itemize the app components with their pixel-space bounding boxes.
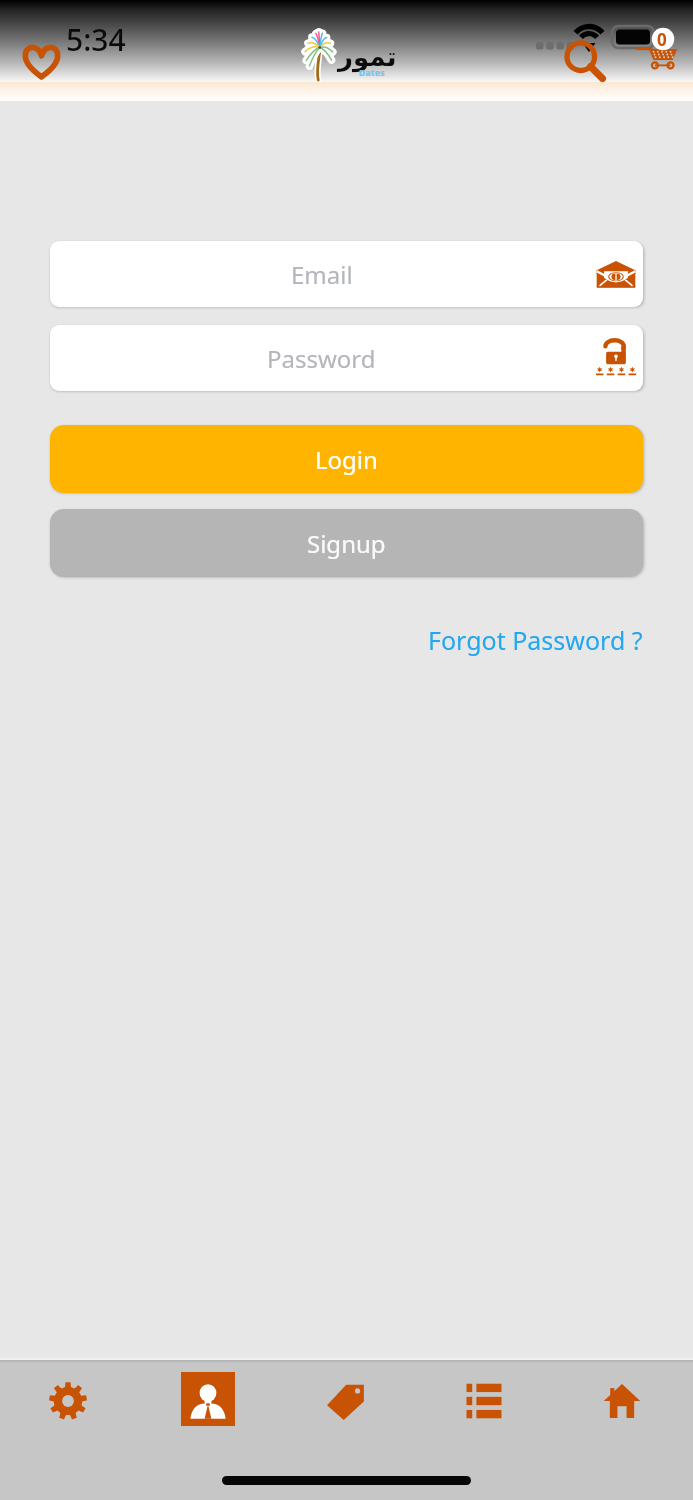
button[interactable]: Email (50, 241, 643, 307)
button[interactable]: Favorites (22, 41, 61, 80)
button[interactable]: Login (50, 425, 643, 493)
button[interactable]: Cart (644, 26, 678, 74)
button[interactable]: Forgot Password ? (428, 617, 643, 663)
button[interactable]: Signup (50, 509, 643, 577)
button[interactable]: Categories (457, 1372, 511, 1426)
button[interactable]: Account (181, 1372, 235, 1426)
button[interactable]: Home (595, 1372, 649, 1426)
button[interactable]: Search (561, 36, 607, 82)
staticText: 5:34 (66, 19, 126, 60)
button[interactable]: Password (50, 325, 643, 391)
staticText: Signup (307, 527, 386, 560)
button[interactable]: Offers (319, 1372, 373, 1426)
staticText: تمور (338, 42, 397, 72)
staticText: Login (315, 443, 378, 476)
staticText: Dates (359, 66, 385, 78)
staticText: Forgot Password ? (428, 623, 643, 657)
button[interactable]: Settings (41, 1372, 95, 1426)
staticText: Email (291, 258, 353, 291)
staticText: 0 (657, 28, 667, 50)
staticText: Password (267, 342, 376, 375)
